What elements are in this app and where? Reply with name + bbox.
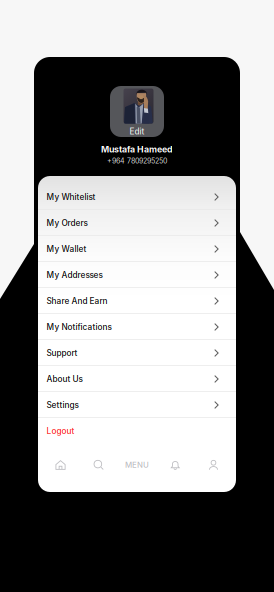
button[interactable]: Settings [38,392,236,418]
staticText: +964 7809295250 [107,157,167,165]
button[interactable]: Support [38,340,236,366]
staticText: Mustafa Hameed [101,144,173,155]
button[interactable]: Profile [194,460,233,470]
staticText: My Wallet [46,244,86,254]
staticText: Edit [129,126,144,136]
staticText: Settings [46,400,78,410]
staticText: Logout [46,426,74,436]
button[interactable]: Home [41,460,80,470]
staticText: MENU [125,460,149,470]
button[interactable]: My Whitelist [38,184,236,210]
button[interactable]: My Wallet [38,236,236,262]
staticText: Share And Earn [46,296,107,306]
staticText: About Us [46,374,82,384]
button[interactable]: About Us [38,366,236,392]
button[interactable]: Edit profile photo [110,86,164,137]
button[interactable]: Share And Earn [38,288,236,314]
button[interactable]: Search [80,460,118,470]
button[interactable]: My Addresses [38,262,236,288]
staticText: My Addresses [46,270,102,280]
staticText: My Whitelist [46,192,95,202]
button[interactable]: MENU [118,460,156,470]
button[interactable]: Notifications [156,460,194,470]
button[interactable]: Logout [38,418,236,444]
button[interactable]: My Orders [38,210,236,236]
staticText: My Orders [46,218,87,228]
button[interactable]: My Notifications [38,314,236,340]
staticText: Support [46,348,77,358]
staticText: My Notifications [46,322,111,332]
